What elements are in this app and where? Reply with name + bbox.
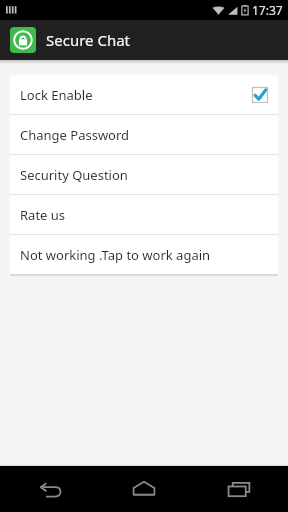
staticText: Change Password [20,126,268,144]
button[interactable]: Security Question [10,155,278,194]
button[interactable]: Back [0,466,96,512]
staticText: Lock Enable [20,86,252,104]
button[interactable]: Recent apps [192,466,288,512]
button[interactable]: Not working .Tap to work again [10,235,278,274]
other: Lock Enable checkbox, checked [252,87,268,103]
button[interactable]: Change Password [10,115,278,154]
button[interactable]: Rate us [10,195,278,234]
staticText: Security Question [20,166,268,184]
staticText: Rate us [20,206,268,224]
button[interactable]: Home [96,466,192,512]
staticText: Not working .Tap to work again [20,246,268,264]
staticText: 17:37 [252,2,283,18]
button[interactable]: Lock Enable [10,75,278,114]
staticText: Secure Chat [46,30,131,50]
other: Secure Chat app icon [10,27,36,53]
